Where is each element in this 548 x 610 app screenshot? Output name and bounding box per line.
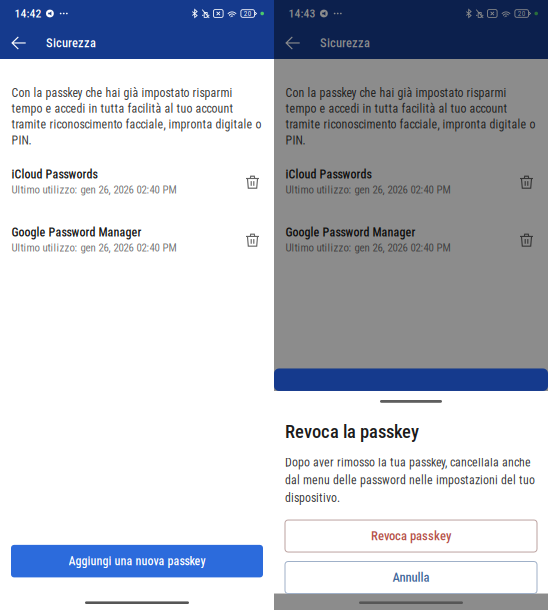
button[interactable]: Google Password Manager <box>0 225 274 254</box>
staticText: Con la passkey che hai già impostato ris… <box>11 86 261 147</box>
staticText: Ultimo utilizzo: gen 26, 2026 02:40 PM <box>11 183 176 196</box>
staticText: Dopo aver rimosso la tua passkey, cancel… <box>285 455 535 505</box>
staticText: Sicurezza <box>320 36 370 50</box>
staticText: Con la passkey che hai già impostato ris… <box>285 86 535 147</box>
button[interactable]: Indietro <box>8 29 30 57</box>
button[interactable]: Aggiungi una nuova passkey <box>11 545 263 577</box>
staticText: 20 <box>244 9 252 18</box>
button[interactable]: Revoca passkey <box>285 520 537 552</box>
staticText: 14:42 <box>14 7 41 20</box>
staticText: Ultimo utilizzo: gen 26, 2026 02:40 PM <box>285 183 450 196</box>
staticText: iCloud Passwords <box>11 167 97 181</box>
staticText: Google Password Manager <box>285 225 415 239</box>
button[interactable]: iCloud Passwords <box>0 167 274 196</box>
button[interactable]: Indietro <box>282 29 304 57</box>
staticText: Google Password Manager <box>11 225 141 239</box>
staticText: 20 <box>518 9 526 18</box>
staticText: Aggiungi una nuova passkey <box>68 554 205 568</box>
staticText: Sicurezza <box>46 36 96 50</box>
staticText: Annulla <box>392 570 429 585</box>
staticText: iCloud Passwords <box>285 167 371 181</box>
button[interactable]: Google Password Manager <box>274 225 548 254</box>
staticText: Revoca passkey <box>371 529 451 543</box>
staticText: Revoca la passkey <box>285 421 419 442</box>
staticText: Ultimo utilizzo: gen 26, 2026 02:40 PM <box>285 241 450 254</box>
button[interactable]: iCloud Passwords <box>274 167 548 196</box>
staticText: Ultimo utilizzo: gen 26, 2026 02:40 PM <box>11 241 176 254</box>
staticText: 14:43 <box>288 7 315 20</box>
button[interactable]: Annulla <box>285 561 537 593</box>
